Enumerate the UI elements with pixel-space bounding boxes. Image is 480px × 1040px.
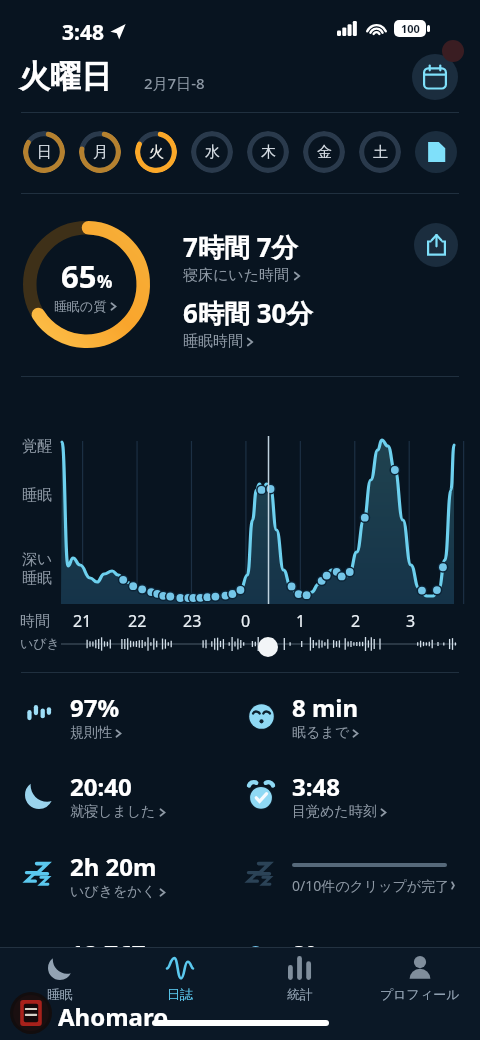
staticText: 6時間 30分 — [183, 295, 313, 331]
staticText: 2h 20m — [70, 850, 157, 883]
staticText: 3:48 — [292, 770, 340, 803]
staticText: 寝床にいた時間 — [183, 266, 290, 285]
button[interactable]: Notes — [415, 131, 457, 173]
button[interactable]: 12,767 — [24, 925, 234, 981]
staticText: 1 — [296, 610, 306, 632]
button[interactable]: 睡眠 — [0, 955, 120, 1011]
staticText: 12,767 — [70, 937, 146, 970]
staticText: 眠るまで — [292, 724, 349, 742]
button[interactable]: 統計 — [240, 955, 360, 1011]
staticText: Ahomaro — [58, 1000, 169, 1033]
staticText: 覚醒 — [22, 437, 52, 456]
button[interactable]: 97% — [24, 688, 234, 744]
staticText: 水 — [205, 143, 220, 162]
staticText: いびき — [20, 635, 60, 651]
button[interactable]: 月 — [79, 131, 121, 173]
staticText: 21 — [73, 610, 92, 632]
button[interactable]: 木 — [247, 131, 289, 173]
button[interactable]: Calendar — [412, 54, 458, 100]
staticText: 深い — [22, 550, 53, 569]
staticText: 火 — [149, 143, 164, 162]
staticText: 土 — [373, 143, 388, 162]
staticText: 8° — [292, 937, 316, 970]
staticText: 統計 — [287, 986, 313, 1002]
staticText: 3 — [406, 610, 416, 632]
staticText: 3:48 — [62, 18, 104, 47]
staticText: % — [97, 270, 113, 293]
staticText: 22 — [128, 610, 147, 632]
staticText: 日誌 — [167, 986, 193, 1002]
staticText: 木 — [261, 143, 276, 162]
button[interactable]: 水 — [191, 131, 233, 173]
staticText: 7時間 7分 — [183, 229, 298, 265]
staticText: 時間 — [20, 612, 50, 631]
button[interactable]: 2h 20m — [24, 847, 234, 903]
button[interactable]: 寝床にいた時間 — [183, 266, 304, 285]
button[interactable]: 0/10件のクリップが完了 — [246, 847, 456, 903]
staticText: 睡眠 — [22, 569, 52, 588]
staticText: 97% — [70, 691, 120, 724]
staticText: 火曜日 — [19, 57, 112, 96]
button[interactable]: 8 min — [246, 688, 456, 744]
button[interactable]: 金 — [303, 131, 345, 173]
staticText: 睡眠 — [22, 486, 52, 505]
staticText: 就寝しました — [70, 803, 156, 821]
staticText: 100 — [401, 21, 420, 36]
staticText: 睡眠時間 — [183, 332, 243, 351]
button[interactable]: 土 — [359, 131, 401, 173]
staticText: 月 — [93, 143, 108, 162]
button[interactable]: 火 — [135, 131, 177, 173]
staticText: 8 min — [292, 691, 359, 724]
button[interactable]: プロフィール — [360, 955, 480, 1011]
staticText: 65 — [61, 255, 97, 297]
staticText: 23 — [183, 610, 202, 632]
staticText: 2月7日-8 — [144, 73, 205, 93]
staticText: 0 — [241, 610, 251, 632]
button[interactable]: 日 — [23, 131, 65, 173]
staticText: プロフィール — [380, 986, 460, 1002]
staticText: 睡眠の質 — [54, 298, 107, 314]
button[interactable]: 日誌 — [120, 955, 240, 1011]
button[interactable]: 睡眠時間 — [183, 332, 257, 351]
staticText: 規則性 — [70, 724, 112, 742]
button[interactable]: Share — [414, 223, 458, 267]
button[interactable]: 3:48 — [246, 767, 456, 823]
staticText: 0/10件のクリップが完了 — [292, 876, 450, 895]
staticText: 2 — [351, 610, 361, 632]
button[interactable]: 8° — [246, 925, 456, 981]
staticText: 20:40 — [70, 770, 132, 803]
button[interactable]: 20:40 — [24, 767, 234, 823]
staticText: 目覚めた時刻 — [292, 803, 377, 821]
staticText: 金 — [317, 143, 332, 162]
staticText: 睡眠 — [47, 986, 73, 1002]
staticText: いびきをかく — [70, 883, 156, 901]
button[interactable]: 65 — [23, 221, 150, 348]
staticText: 日 — [37, 143, 52, 162]
